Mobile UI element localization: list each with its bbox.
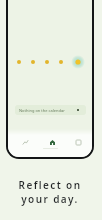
- button[interactable]: [42, 57, 52, 67]
- button[interactable]: Home: [46, 136, 58, 148]
- button[interactable]: Journal: [72, 136, 84, 148]
- button[interactable]: Nothing on the calendar: [15, 105, 86, 115]
- staticText: Nothing on the calendar: [19, 108, 65, 113]
- button[interactable]: [14, 57, 24, 67]
- button[interactable]: Selected mood: good: [71, 55, 85, 69]
- button[interactable]: [28, 57, 38, 67]
- button[interactable]: [56, 57, 66, 67]
- staticText: Reflect on your day.: [0, 178, 101, 206]
- button[interactable]: Insights: [19, 136, 31, 148]
